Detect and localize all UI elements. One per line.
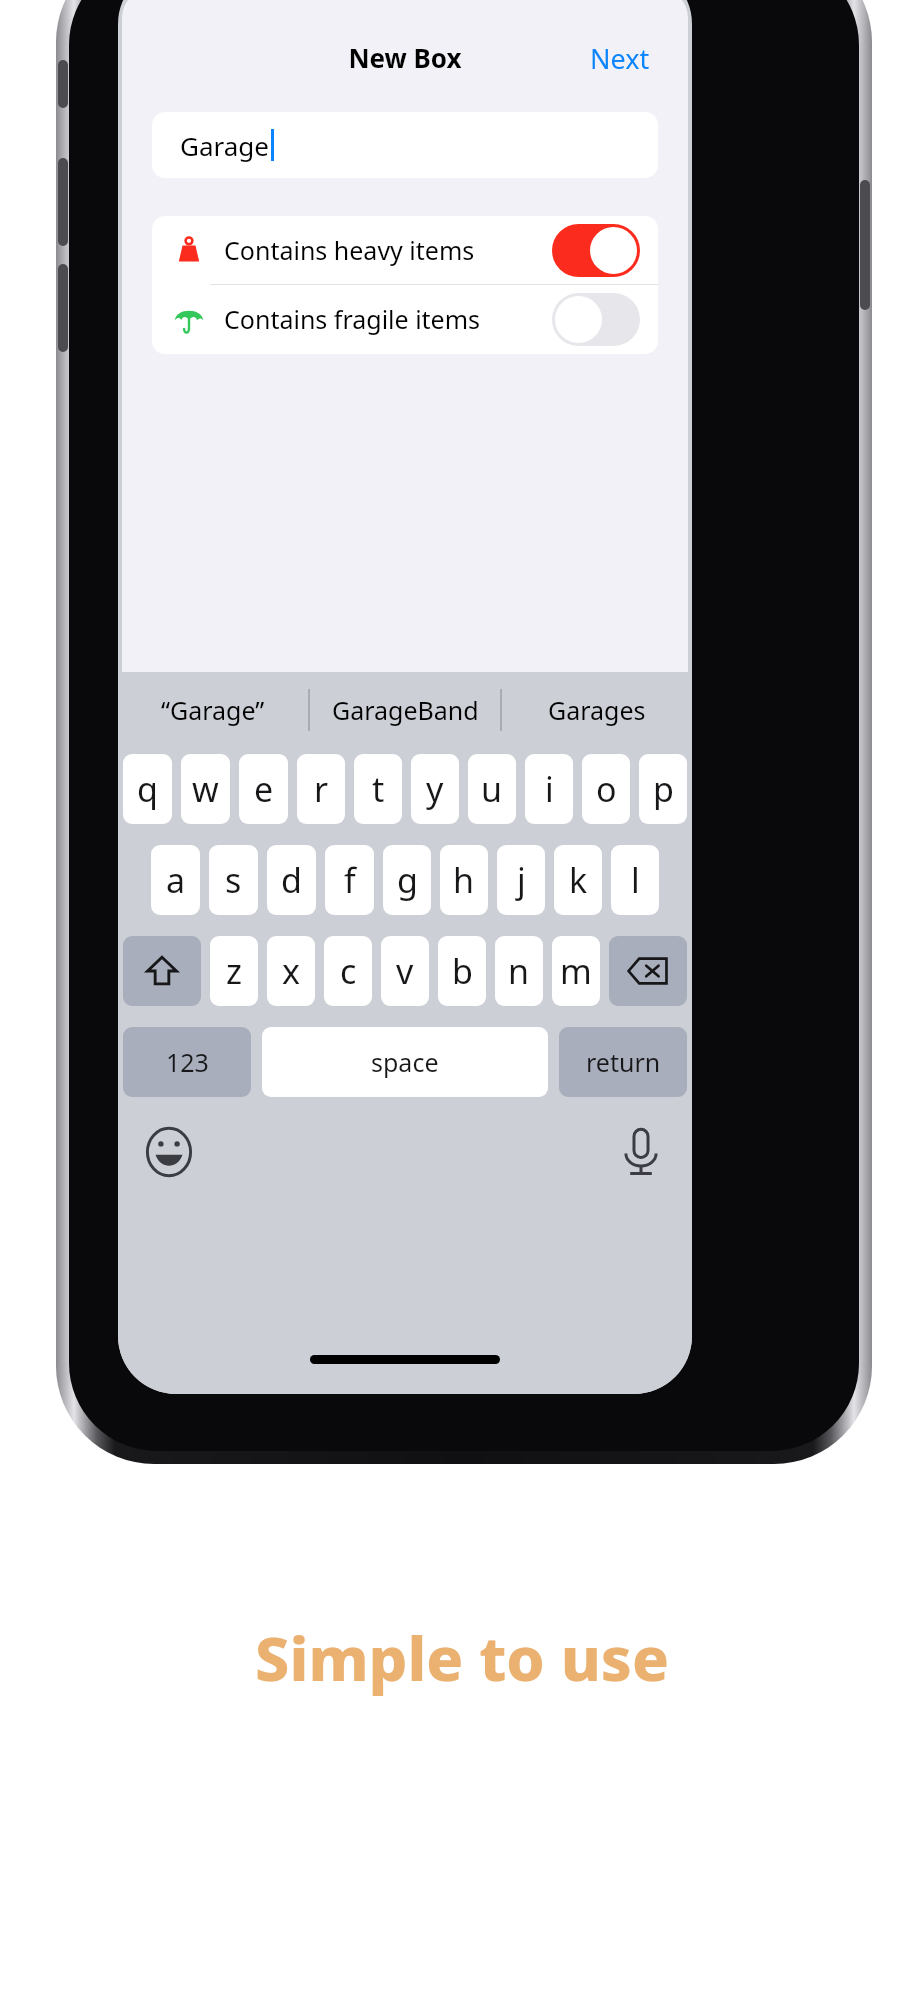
staticText: l: [631, 857, 640, 903]
staticText: z: [226, 948, 242, 994]
button[interactable]: w: [181, 754, 230, 824]
staticText: r: [314, 766, 329, 812]
button[interactable]: Next: [580, 30, 660, 87]
staticText: Garage: [180, 128, 269, 163]
staticText: 123: [166, 1045, 209, 1079]
button[interactable]: h: [440, 845, 488, 915]
staticText: g: [397, 857, 418, 903]
button[interactable]: Emoji: [142, 1125, 196, 1179]
button[interactable]: s: [209, 845, 258, 915]
button[interactable]: q: [123, 754, 172, 824]
staticText: b: [452, 948, 473, 994]
button[interactable]: v: [381, 936, 429, 1006]
button[interactable]: i: [525, 754, 573, 824]
staticText: Next: [590, 40, 650, 77]
staticText: Garages: [548, 693, 646, 727]
button[interactable]: a: [151, 845, 200, 915]
staticText: n: [508, 948, 530, 994]
button[interactable]: Toggle on: [552, 224, 640, 277]
staticText: e: [254, 766, 274, 812]
staticText: Simple to use: [0, 1616, 924, 1699]
button[interactable]: g: [383, 845, 431, 915]
button[interactable]: z: [210, 936, 258, 1006]
staticText: m: [560, 948, 592, 994]
button[interactable]: d: [267, 845, 316, 915]
staticText: t: [372, 766, 385, 812]
button[interactable]: e: [239, 754, 288, 824]
button[interactable]: x: [267, 936, 315, 1006]
button[interactable]: t: [354, 754, 402, 824]
button[interactable]: u: [468, 754, 516, 824]
button[interactable]: l: [611, 845, 659, 915]
staticText: j: [517, 857, 526, 903]
staticText: v: [396, 948, 414, 994]
staticText: q: [137, 766, 158, 812]
staticText: h: [453, 857, 475, 903]
button[interactable]: Backspace: [609, 936, 687, 1006]
button[interactable]: Dictation: [614, 1125, 668, 1179]
button[interactable]: return: [559, 1027, 687, 1097]
staticText: i: [545, 766, 554, 812]
button[interactable]: n: [495, 936, 543, 1006]
button[interactable]: p: [639, 754, 687, 824]
button[interactable]: “Garage”: [118, 672, 308, 748]
button[interactable]: o: [582, 754, 630, 824]
staticText: c: [340, 948, 357, 994]
button[interactable]: Garage: [152, 112, 658, 178]
staticText: f: [344, 857, 356, 903]
staticText: Contains fragile items: [224, 302, 481, 336]
button[interactable]: space: [262, 1027, 548, 1097]
staticText: x: [282, 948, 300, 994]
staticText: p: [653, 766, 674, 812]
staticText: s: [225, 857, 242, 903]
staticText: y: [426, 766, 444, 812]
button[interactable]: k: [554, 845, 602, 915]
button[interactable]: Contains fragile items: [152, 285, 658, 353]
button[interactable]: Shift: [123, 936, 201, 1006]
button[interactable]: 123: [123, 1027, 251, 1097]
button[interactable]: GarageBand: [310, 672, 500, 748]
staticText: k: [569, 857, 588, 903]
button[interactable]: c: [324, 936, 372, 1006]
staticText: u: [481, 766, 503, 812]
button[interactable]: m: [552, 936, 600, 1006]
staticText: w: [192, 766, 219, 812]
button[interactable]: f: [325, 845, 374, 915]
staticText: d: [281, 857, 302, 903]
staticText: o: [596, 766, 617, 812]
staticText: GarageBand: [332, 693, 479, 727]
button[interactable]: Garages: [502, 672, 692, 748]
staticText: space: [371, 1045, 439, 1079]
button[interactable]: Contains heavy items: [152, 216, 658, 284]
staticText: a: [166, 857, 186, 903]
staticText: return: [586, 1045, 661, 1079]
staticText: New Box: [122, 40, 688, 75]
button[interactable]: Toggle off: [552, 293, 640, 346]
button[interactable]: j: [497, 845, 545, 915]
button[interactable]: b: [438, 936, 486, 1006]
button[interactable]: y: [411, 754, 459, 824]
staticText: “Garage”: [161, 693, 265, 727]
staticText: Contains heavy items: [224, 233, 475, 267]
button[interactable]: r: [297, 754, 345, 824]
